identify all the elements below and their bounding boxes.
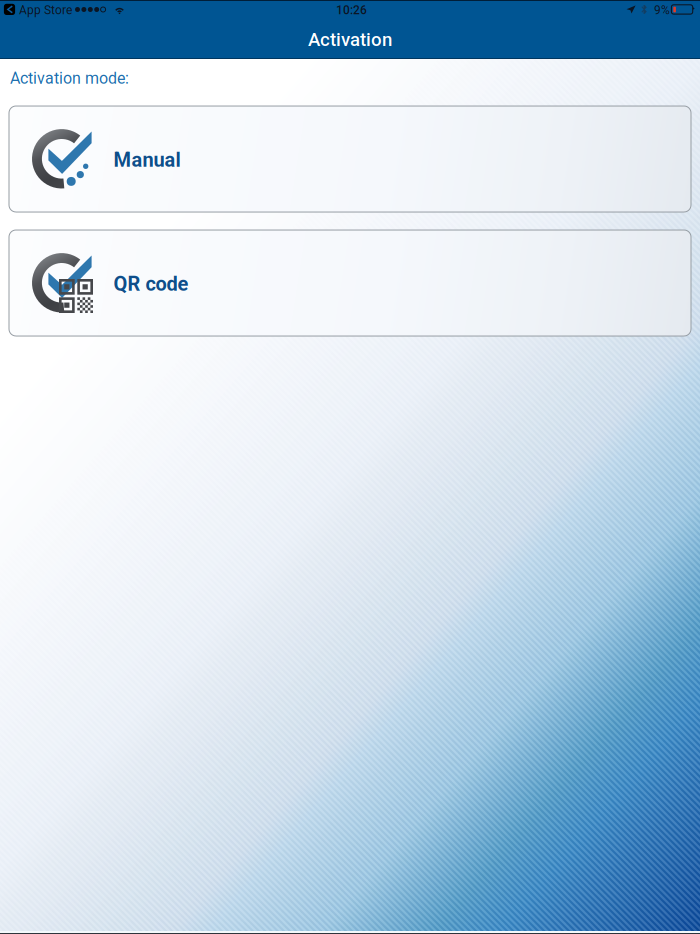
- button[interactable]: Back to App Store: [4, 4, 15, 15]
- staticText: 9%: [654, 3, 670, 17]
- staticText: Activation: [308, 29, 392, 50]
- staticText: App Store: [19, 3, 72, 17]
- staticText: 10:26: [336, 3, 367, 17]
- staticText: Activation mode:: [10, 69, 129, 88]
- staticText: Manual: [113, 148, 180, 172]
- staticText: QR code: [113, 272, 188, 296]
- button[interactable]: Manual: [9, 106, 691, 212]
- button[interactable]: QR code: [9, 230, 691, 336]
